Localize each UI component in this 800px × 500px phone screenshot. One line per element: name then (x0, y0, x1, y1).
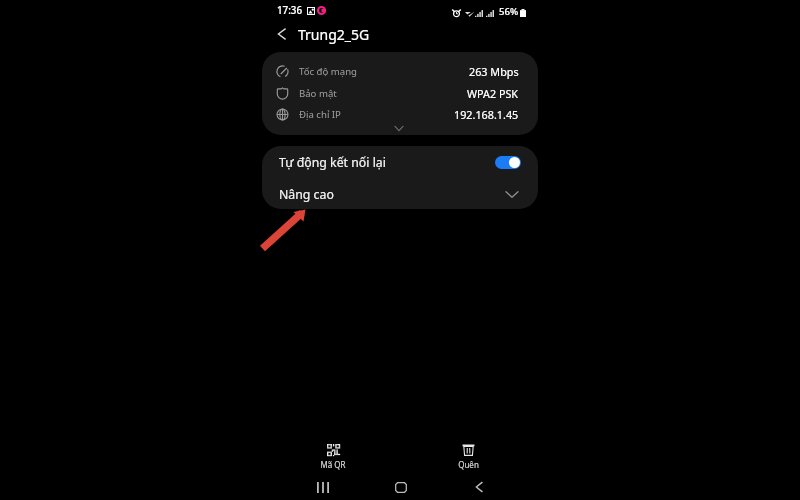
button[interactable]: Auto reconnect toggle (495, 156, 521, 169)
button[interactable]: Show more details (262, 123, 538, 133)
button[interactable]: Quên (438, 432, 498, 472)
staticText: Bảo mật (299, 87, 337, 100)
staticText: WPA2 PSK (467, 86, 519, 101)
staticText: Quên (458, 459, 479, 470)
button[interactable]: Recents (303, 474, 343, 500)
button[interactable]: Tốc độ mạng (262, 60, 538, 82)
staticText: 192.168.1.45 (454, 107, 519, 122)
staticText: Tốc độ mạng (299, 65, 357, 78)
button[interactable]: Nâng cao (262, 182, 538, 207)
staticText: 56% (499, 5, 519, 18)
staticText: Tự động kết nối lại (279, 154, 386, 171)
staticText: Mã QR (320, 459, 346, 470)
button[interactable]: Back (459, 474, 499, 500)
button[interactable]: Tự động kết nối lại (262, 150, 538, 175)
staticText: Địa chỉ IP (299, 108, 341, 121)
button[interactable]: Địa chỉ IP (262, 103, 538, 125)
staticText: 17:36 (277, 4, 303, 17)
button[interactable]: Back (262, 20, 298, 48)
staticText: Nâng cao (279, 186, 334, 203)
button[interactable]: Bảo mật (262, 82, 538, 104)
staticText: 263 Mbps (469, 64, 519, 79)
button[interactable]: Home (381, 474, 421, 500)
staticText: Trung2_5G (298, 25, 370, 44)
button[interactable]: Mã QR (303, 432, 363, 472)
